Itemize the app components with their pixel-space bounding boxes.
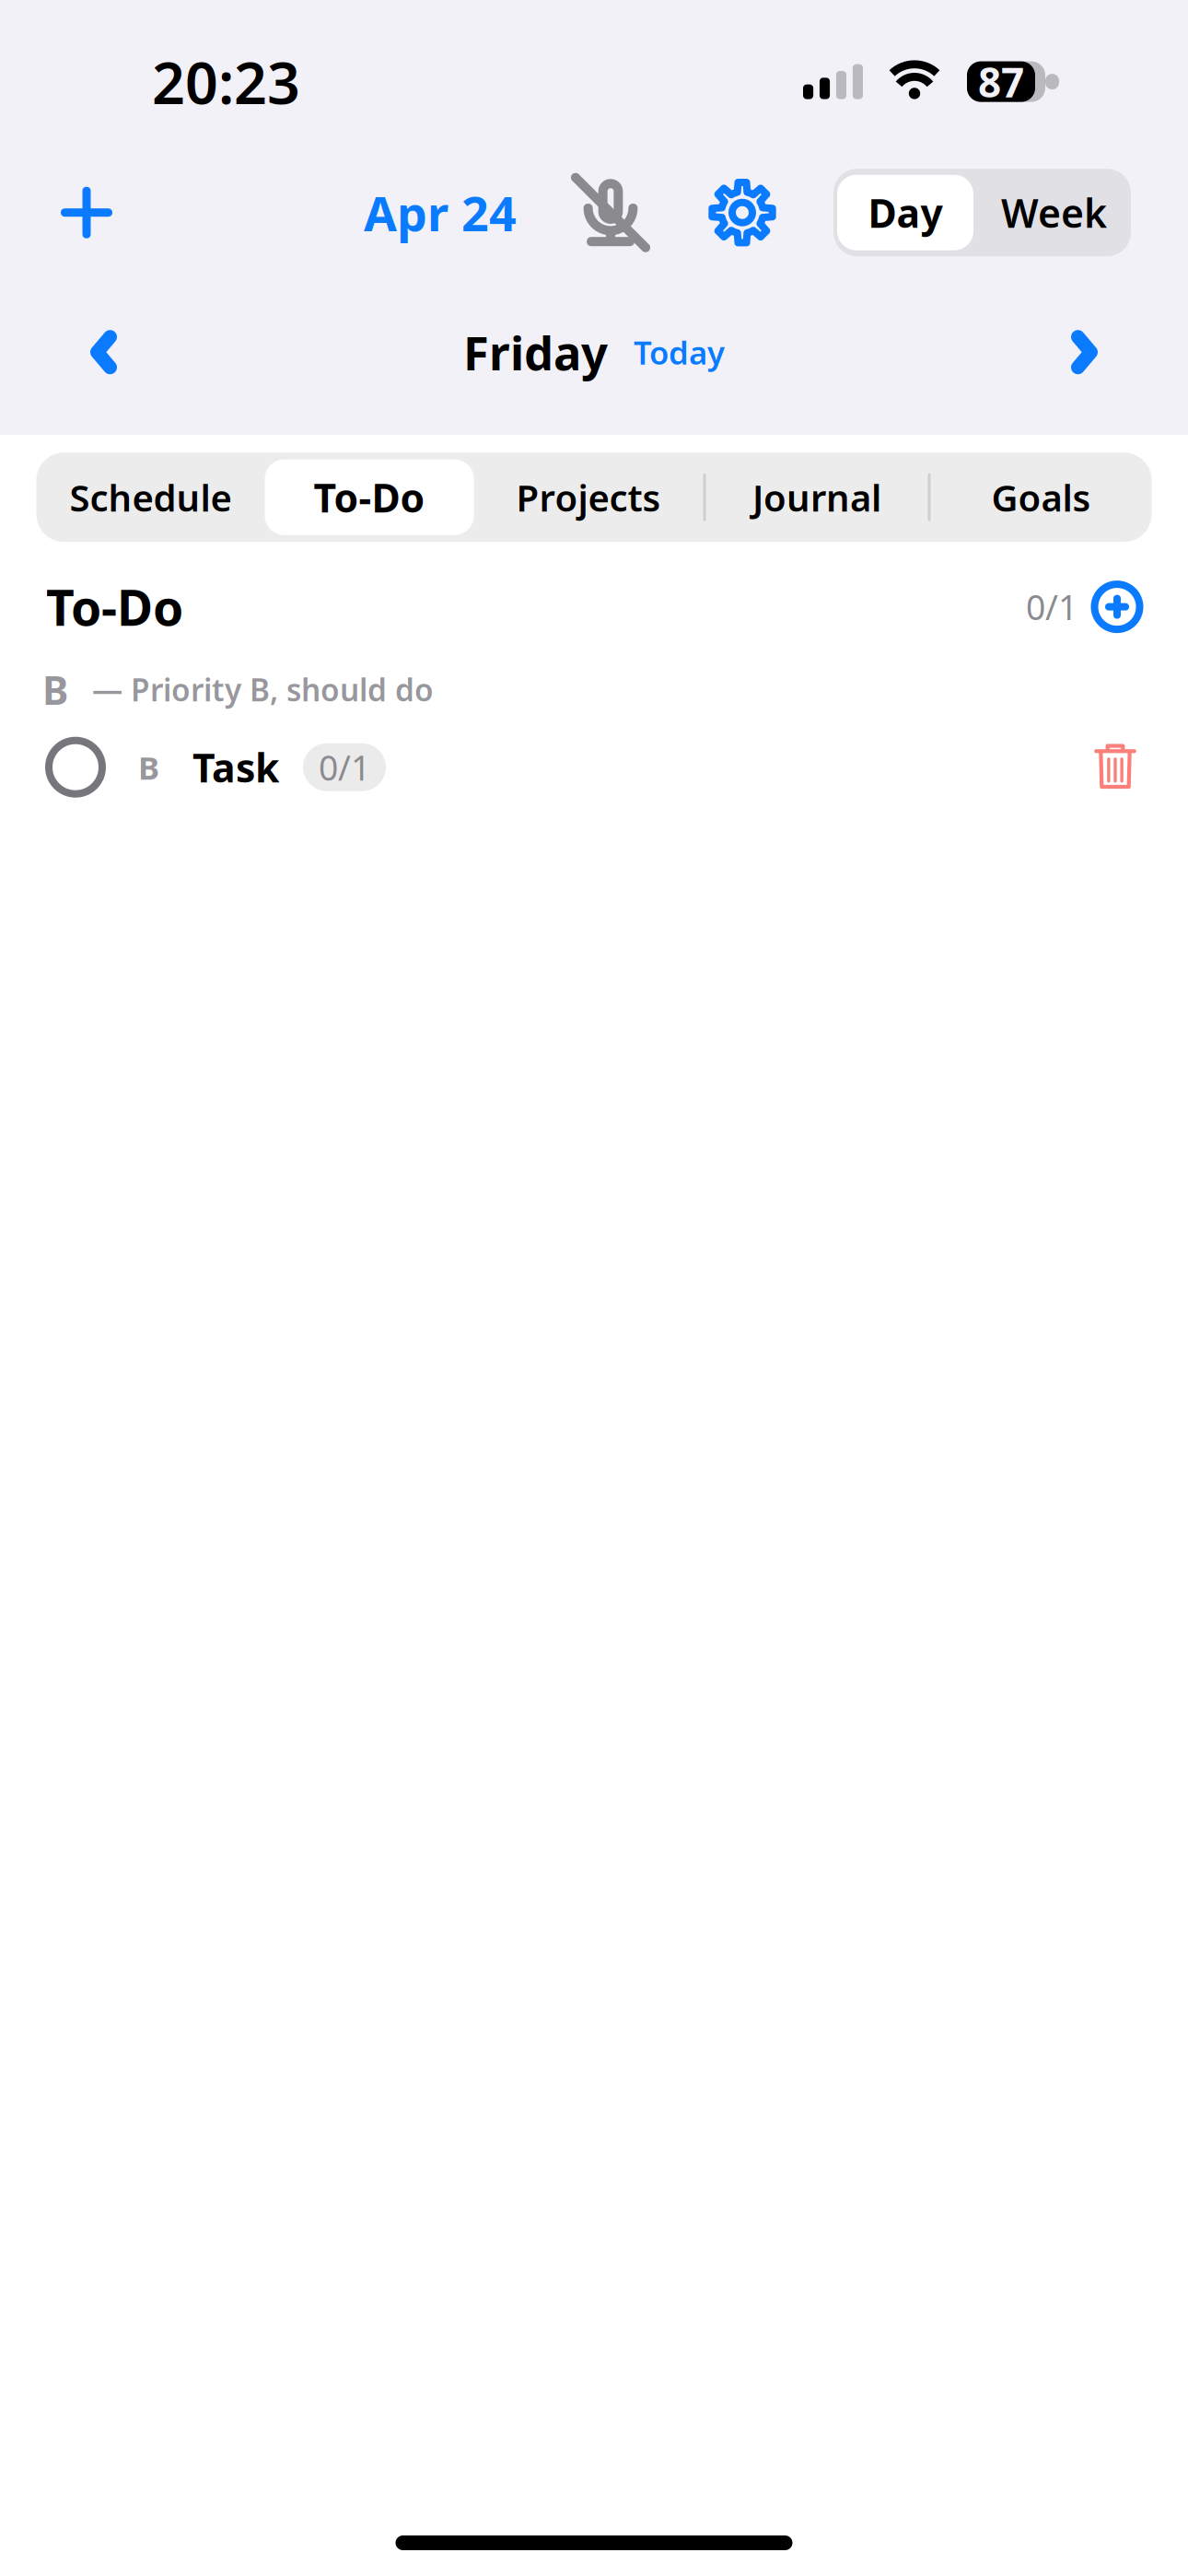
staticText: Task bbox=[192, 741, 279, 793]
button[interactable]: Complete task bbox=[36, 728, 115, 807]
staticText: Day bbox=[868, 186, 943, 239]
staticText: 20:23 bbox=[152, 43, 300, 120]
button[interactable]: Next day bbox=[1038, 301, 1131, 404]
button[interactable]: Goals bbox=[931, 453, 1152, 542]
button[interactable]: Schedule bbox=[36, 453, 265, 542]
button[interactable]: Add task bbox=[1094, 584, 1140, 630]
button[interactable]: Settings bbox=[697, 178, 787, 247]
staticText: B bbox=[42, 663, 68, 716]
button[interactable]: Add bbox=[34, 166, 139, 259]
staticText: B bbox=[138, 746, 159, 788]
staticText: 87 bbox=[978, 55, 1024, 109]
staticText: To-Do bbox=[314, 471, 425, 523]
button[interactable]: Previous day bbox=[57, 301, 150, 404]
button[interactable]: Projects bbox=[474, 453, 703, 542]
staticText: — Priority B, should do bbox=[92, 669, 434, 710]
staticText: Apr 24 bbox=[364, 181, 517, 244]
staticText: Projects bbox=[516, 473, 661, 522]
staticText: Journal bbox=[752, 473, 881, 522]
staticText: 0/1 bbox=[1026, 584, 1077, 630]
button[interactable]: Day bbox=[833, 169, 977, 256]
button[interactable]: Microphone off bbox=[572, 179, 649, 246]
staticText: Friday bbox=[463, 321, 608, 383]
button[interactable]: Delete task bbox=[1074, 728, 1157, 806]
staticText: 0/1 bbox=[319, 744, 370, 790]
staticText: Week bbox=[1001, 186, 1107, 239]
button[interactable]: Journal bbox=[706, 453, 928, 542]
button[interactable]: Week bbox=[977, 169, 1131, 256]
staticText: Today bbox=[634, 331, 725, 373]
staticText: Schedule bbox=[70, 473, 232, 522]
button[interactable]: To-Do bbox=[265, 453, 474, 542]
staticText: To-Do bbox=[46, 574, 183, 639]
staticText: Goals bbox=[991, 473, 1091, 522]
